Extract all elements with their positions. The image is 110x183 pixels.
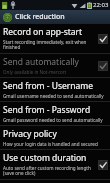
staticText: Send from - Password: [3, 104, 91, 116]
staticText: Privacy policy: [3, 128, 57, 140]
staticText: How your login data is handled and secur…: [3, 141, 98, 147]
staticText: Auto send after custom recording length …: [3, 165, 96, 177]
other: App icon: [3, 13, 12, 22]
button[interactable]: Toggle: [98, 160, 108, 170]
staticText: Gmail username needed to send automatica…: [3, 93, 104, 99]
staticText: Only available in Not-mercort: [3, 69, 67, 75]
button[interactable]: Toggle: [98, 34, 108, 44]
button[interactable]: Toggle: [98, 61, 108, 71]
button[interactable]: App icon: [0, 10, 110, 24]
button[interactable]: Send automatically: [0, 54, 110, 77]
staticText: Use custom duration: [3, 152, 87, 164]
button[interactable]: Use custom duration: [0, 150, 110, 179]
staticText: 22:03: [93, 1, 109, 9]
staticText: Record on app-start: [3, 26, 83, 38]
button[interactable]: Send from - Password: [0, 102, 110, 125]
staticText: Click reduction: [15, 12, 65, 22]
staticText: Gmail password needed to send automatica…: [3, 117, 103, 123]
staticText: Send from - Username: [3, 80, 94, 92]
button[interactable]: Privacy policy: [0, 126, 110, 149]
button[interactable]: Send from - Username: [0, 78, 110, 101]
staticText: Send automatically: [3, 56, 79, 68]
button[interactable]: Record on app-start: [0, 24, 110, 53]
staticText: Start recording immediately, exit when f…: [3, 39, 96, 51]
